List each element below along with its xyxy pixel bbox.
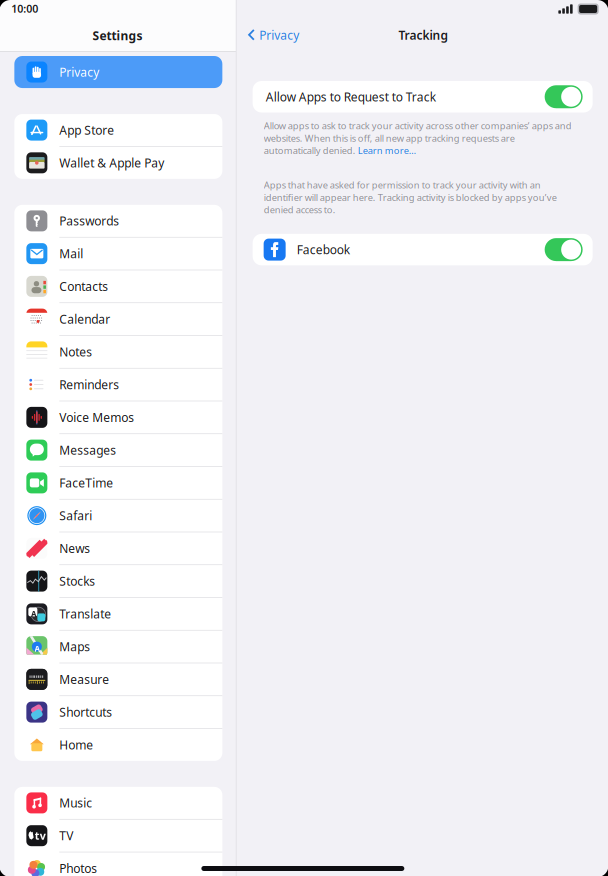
staticText: Privacy [59,64,99,80]
staticText: A [31,609,37,619]
button[interactable]: FaceTime [14,467,222,499]
button[interactable]: Toggle [545,85,583,108]
staticText: FaceTime [59,475,113,491]
button[interactable]: App Store [14,114,222,146]
staticText: TV [59,828,73,844]
button[interactable]: Photos [14,852,222,876]
staticText: Music [59,795,92,811]
button[interactable]: Stocks [14,565,222,597]
button[interactable]: News [14,532,222,564]
staticText: Wallet & Apple Pay [59,155,164,171]
staticText: A [35,643,41,654]
button[interactable]: Music [14,787,222,819]
staticText: Voice Memos [59,409,134,425]
button[interactable]: tv [14,820,222,852]
button[interactable]: Notes [14,336,222,368]
staticText: Calendar [59,311,110,327]
staticText: Translate [59,606,111,622]
staticText: App Store [59,122,114,138]
button[interactable]: Shortcuts [14,696,222,728]
staticText: Messages [59,442,116,458]
button[interactable]: Voice Memos [14,401,222,433]
button[interactable]: Reminders [14,369,222,401]
staticText: Privacy [259,27,299,43]
button[interactable]: Facebook [253,234,593,265]
staticText: Contacts [59,278,108,294]
staticText: Mail [59,246,83,262]
staticText: Reminders [59,377,119,393]
staticText: 10:00 [11,1,38,16]
button[interactable]: A [14,631,222,663]
staticText: Facebook [297,242,350,257]
staticText: Home [59,737,93,753]
button[interactable]: Contacts [14,270,222,302]
button[interactable]: Privacy [248,25,305,45]
staticText: Safari [59,508,92,524]
staticText: tv [35,829,46,843]
staticText: Photos [59,860,97,876]
button[interactable]: Calendar [14,303,222,335]
button[interactable]: Safari [14,500,222,532]
button[interactable]: Wallet & Apple Pay [14,147,222,179]
staticText: Measure [59,671,109,687]
button[interactable]: Mail [14,238,222,270]
button[interactable]: A [14,598,222,630]
staticText: Allow apps to ask to track your activity… [264,119,572,157]
staticText: Passwords [59,213,119,229]
button[interactable]: Passwords [14,205,222,237]
button[interactable]: Privacy [14,56,222,88]
button[interactable]: Messages [14,434,222,466]
staticText: Allow Apps to Request to Track [266,89,436,105]
button[interactable]: Measure [14,663,222,695]
staticText: Maps [59,639,90,655]
staticText: Notes [59,344,92,360]
staticText: News [59,540,90,556]
staticText: Stocks [59,573,95,589]
button[interactable]: Toggle [545,238,583,261]
staticText: Tracking [398,27,448,43]
staticText: Shortcuts [59,704,112,720]
staticText: Apps that have asked for permission to t… [264,179,557,216]
button[interactable]: Home [14,729,222,761]
staticText: Settings [93,28,143,43]
